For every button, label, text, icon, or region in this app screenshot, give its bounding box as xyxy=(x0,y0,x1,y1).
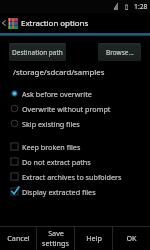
button[interactable]: Browse... xyxy=(98,43,141,61)
staticText: Extract archives to subfolders xyxy=(22,172,122,182)
staticText: Overwrite without prompt xyxy=(22,104,111,114)
button[interactable]: Do not extract paths xyxy=(0,154,150,169)
button[interactable]: Overwrite without prompt xyxy=(0,101,150,116)
staticText: Do not extract paths xyxy=(22,157,91,167)
button[interactable]: OK xyxy=(113,226,150,250)
staticText: Browse... xyxy=(106,48,134,57)
button[interactable]: Destination path xyxy=(9,43,66,61)
staticText: Destination path xyxy=(12,48,63,57)
staticText: Display extracted files xyxy=(22,187,96,197)
button[interactable]: Navigate up xyxy=(0,13,8,33)
staticText: OK xyxy=(126,233,137,243)
staticText: Keep broken files xyxy=(22,142,81,152)
staticText: settings xyxy=(42,238,69,248)
button[interactable]: Keep broken files xyxy=(0,139,150,154)
button[interactable]: Cancel xyxy=(0,226,36,250)
staticText: 1:28 xyxy=(134,2,148,11)
staticText: Help xyxy=(86,233,102,243)
staticText: Cancel xyxy=(7,233,30,243)
staticText: Skip existing files xyxy=(22,119,80,129)
button[interactable]: Save xyxy=(37,226,74,250)
staticText: /storage/sdcard/samples xyxy=(13,67,105,78)
staticText: Extraction options xyxy=(21,18,89,29)
button[interactable]: Extract archives to subfolders xyxy=(0,169,150,184)
staticText: Ask before overwrite xyxy=(22,89,92,99)
button[interactable]: Ask before overwrite xyxy=(0,86,150,101)
button[interactable]: Help xyxy=(75,226,112,250)
button[interactable]: Skip existing files xyxy=(0,116,150,131)
staticText: Save xyxy=(48,228,64,238)
button[interactable]: Display extracted files xyxy=(0,184,150,199)
